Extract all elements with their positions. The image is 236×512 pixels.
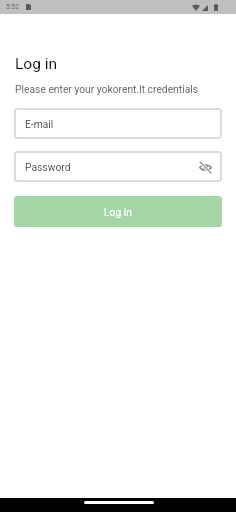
button[interactable]: E-mail: [14, 108, 222, 139]
staticText: Log in: [104, 206, 132, 218]
staticText: E-mail: [25, 118, 54, 130]
staticText: Please enter your yokorent.lt credential…: [15, 83, 199, 95]
button[interactable]: Password: [14, 151, 222, 182]
button[interactable]: Show password: [196, 158, 214, 176]
staticText: 5:52: [6, 3, 19, 11]
other: Home: [84, 501, 154, 504]
staticText: Password: [25, 161, 71, 173]
button[interactable]: Log in: [14, 196, 222, 227]
staticText: Log in: [15, 55, 58, 73]
